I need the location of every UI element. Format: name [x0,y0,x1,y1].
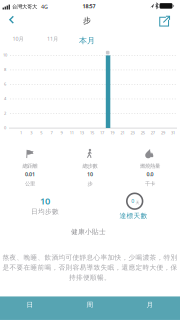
staticText: 6 [4,81,6,87]
button[interactable]: 本月 [72,34,102,47]
staticText: 0 [131,197,134,205]
staticText: 4 [4,96,6,101]
staticText: 公里 [25,180,35,187]
button[interactable]: 10月 [5,33,31,45]
staticText: 11 [70,130,74,135]
staticText: 3 [30,130,32,135]
staticText: 月 [146,301,153,309]
staticText: 10月 [12,35,23,42]
staticText: 熬夜、晚睡、飲酒均可使靜息心率加快，少喝濃茶，特別 [2,253,177,262]
staticText: 燃燒熱量 [140,163,160,169]
staticText: 10 [3,52,7,58]
staticText: 健康小貼士 [71,228,106,236]
staticText: 步 [83,16,91,25]
staticText: 總步數 [82,163,97,169]
staticText: 周 [86,301,93,309]
staticText: 日 [26,301,33,309]
staticText: 13 [80,130,84,135]
button[interactable]: 月 [120,296,180,320]
staticText: 10 [40,195,50,207]
staticText: 2 [4,110,6,116]
staticText: 19 [110,130,114,135]
staticText: 持排便順暢。 [69,273,111,282]
staticText: 步 [87,180,92,187]
button[interactable]: Back [9,15,14,24]
button[interactable]: Share [159,16,170,27]
staticText: 0.0 [146,171,153,178]
staticText: 千卡 [145,180,155,187]
staticText: 15 [90,130,94,135]
staticText: 31 [171,130,175,135]
staticText: 總距離 [22,163,37,169]
staticText: 25 [141,130,145,135]
button[interactable]: 11月 [39,33,65,45]
staticText: 11月 [47,35,58,42]
staticText: 達標天數 [119,212,147,220]
staticText: 18:57 [82,3,95,10]
staticText: 27 [151,130,155,135]
staticText: 日均步數 [31,207,59,216]
button[interactable]: 日 [0,296,60,320]
staticText: 21 [120,130,124,135]
staticText: 17 [100,130,104,135]
staticText: 是不要在睡前喝，否則容易導致失眠，還應定時大便，保 [2,263,177,272]
staticText: 0.01 [25,171,35,178]
staticText: 5 [40,130,42,135]
staticText: 8 [4,67,6,72]
staticText: 4G [41,3,48,10]
staticText: 0 [4,125,6,130]
staticText: 29 [161,130,165,135]
staticText: 7 [50,130,52,135]
button[interactable]: 周 [60,296,120,320]
staticText: 10 [87,171,93,178]
staticText: 本月 [79,36,95,45]
staticText: 9 [61,130,63,135]
staticText: 天 [135,200,139,205]
staticText: 台灣大哥大 [12,3,37,10]
staticText: 23 [130,130,134,135]
staticText: 1 [20,130,22,135]
